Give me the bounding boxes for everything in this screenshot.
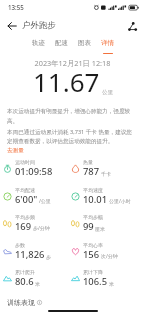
staticText: 步数	[15, 242, 25, 248]
staticText: 配速	[55, 39, 68, 47]
button[interactable]: 步数	[3, 242, 73, 261]
staticText: 累计爬升	[15, 269, 35, 275]
button[interactable]: 去测量	[7, 147, 24, 154]
staticText: 米	[109, 281, 114, 287]
button[interactable]: 详情	[101, 39, 114, 54]
staticText: 本周已通过运动累计消耗 3,731 千卡 热量，建议您定期查看数据，以评估您运动…	[7, 128, 133, 145]
staticText: 步/分钟	[33, 225, 50, 232]
staticText: 99	[83, 220, 94, 233]
staticText: 户外跑步	[22, 20, 56, 31]
staticText: 平均速度	[83, 187, 103, 193]
staticText: 01:09:58	[15, 165, 53, 178]
staticText: 80.6	[15, 275, 34, 288]
staticText: 11.67	[33, 64, 100, 99]
staticText: 平均步频	[15, 214, 35, 220]
staticText: 本次运动提升有明显提升，增强心肺能力，强度较高。	[7, 108, 133, 125]
staticText: 训练表现	[7, 298, 35, 307]
staticText: 详情	[101, 39, 114, 47]
button[interactable]: Back	[4, 18, 20, 34]
staticText: 轨迹	[32, 39, 45, 47]
staticText: 106.5	[83, 275, 108, 288]
staticText: 厘米	[95, 226, 105, 232]
button[interactable]: 配速	[55, 39, 68, 47]
button[interactable]: 训练表现	[7, 298, 42, 307]
button[interactable]: 轨迹	[32, 39, 45, 47]
staticText: 11,826	[15, 248, 45, 261]
staticText: 10.01	[83, 193, 108, 206]
staticText: 156	[83, 248, 100, 261]
button[interactable]: 平均配速	[3, 187, 73, 206]
button[interactable]: Share	[124, 18, 140, 34]
staticText: 运动时间	[15, 159, 35, 165]
button[interactable]: 平均速度	[71, 187, 141, 206]
staticText: 步	[46, 254, 51, 260]
staticText: 千卡	[101, 171, 111, 177]
staticText: 次/分钟	[101, 253, 118, 260]
button[interactable]: 累计下降	[71, 269, 141, 288]
button[interactable]: 累计爬升	[3, 269, 73, 288]
staticText: 平均配速	[15, 187, 35, 193]
button[interactable]: 平均心率	[71, 242, 141, 261]
staticText: 图表	[78, 39, 91, 47]
staticText: 公里	[102, 89, 113, 96]
staticText: 热量	[83, 159, 93, 165]
button[interactable]: 图表	[78, 39, 91, 47]
button[interactable]: 热量	[71, 159, 141, 178]
button[interactable]: 平均步频	[3, 214, 73, 233]
staticText: 米	[35, 281, 40, 287]
button[interactable]: 运动时间	[3, 159, 73, 178]
staticText: /公里	[39, 198, 51, 205]
staticText: 787	[83, 165, 100, 178]
staticText: 公里/小时	[109, 198, 131, 205]
staticText: 2023年12月21日 12:18	[0, 58, 145, 68]
staticText: 平均步幅	[83, 214, 103, 220]
staticText: 6'00"	[15, 193, 38, 206]
staticText: 累计下降	[83, 269, 103, 275]
button[interactable]: 平均步幅	[71, 214, 141, 233]
staticText: 平均心率	[83, 242, 103, 248]
staticText: 169	[15, 220, 32, 233]
staticText: 13:55	[8, 3, 24, 11]
